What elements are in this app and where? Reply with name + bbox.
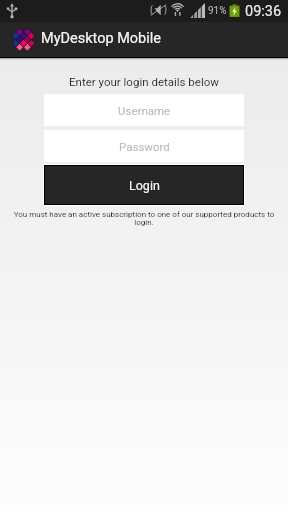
staticText: You must have an active subscription to …: [10, 210, 278, 227]
button[interactable]: Password: [44, 130, 244, 162]
staticText: MyDesktop Mobile: [41, 30, 161, 47]
button[interactable]: Login: [43, 164, 245, 206]
staticText: Enter your login details below: [0, 75, 288, 88]
staticText: Password: [119, 140, 170, 153]
staticText: 09:36: [245, 3, 282, 20]
button[interactable]: Username: [44, 94, 244, 126]
staticText: 91%: [208, 5, 227, 17]
staticText: Username: [118, 104, 171, 117]
staticText: Login: [129, 178, 160, 193]
